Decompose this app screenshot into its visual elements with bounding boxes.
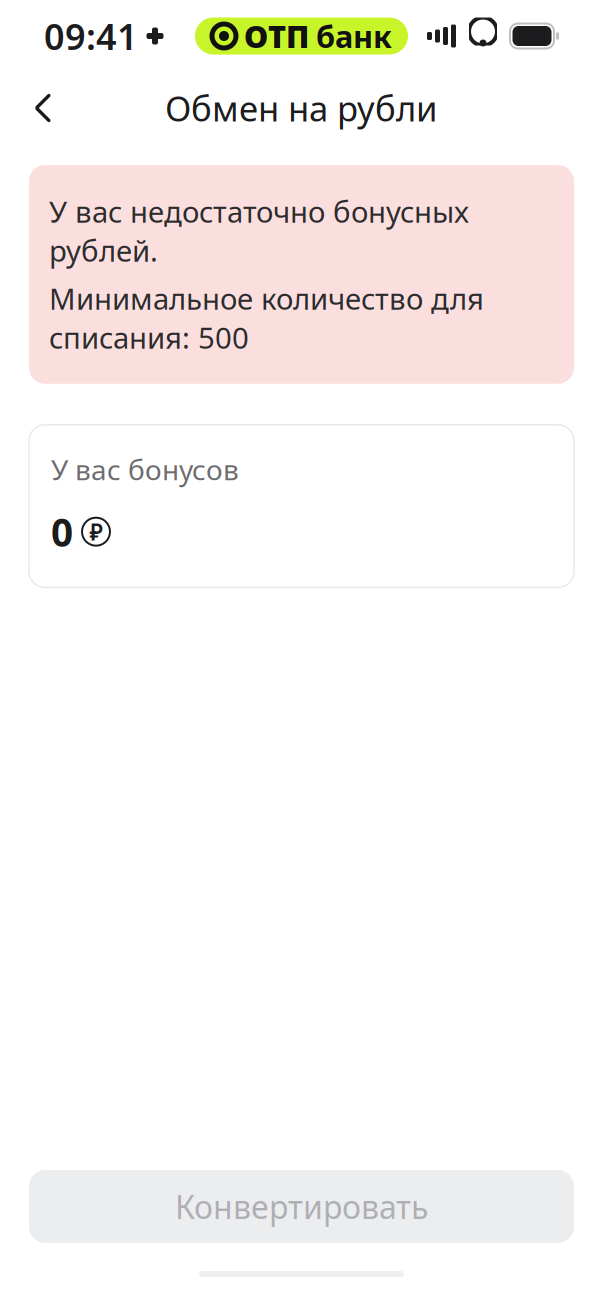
staticText: 0 <box>51 506 73 557</box>
staticText: 09:41 <box>44 12 138 60</box>
staticText: Минимальное количество для списания: 500 <box>49 279 484 357</box>
staticText: Конвертировать <box>175 1185 428 1228</box>
button[interactable]: Конвертировать <box>29 1170 574 1243</box>
staticText: банк <box>316 16 392 56</box>
staticText: Обмен на рубли <box>165 85 438 131</box>
staticText: ₽ <box>89 517 102 547</box>
staticText: У вас бонусов <box>51 451 239 488</box>
staticText: У вас недостаточно бонусных рублей. <box>49 192 469 270</box>
button[interactable]: Назад <box>12 77 74 139</box>
staticText: ОТП <box>244 16 309 56</box>
